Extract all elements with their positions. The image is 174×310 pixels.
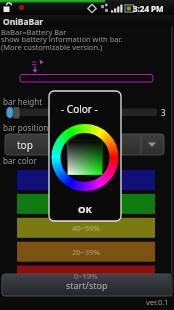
staticText: OniBaBar bbox=[3, 16, 44, 28]
staticText: 3 bbox=[161, 107, 166, 118]
staticText: 80~100% bbox=[70, 175, 102, 185]
staticText: bar color bbox=[3, 155, 37, 166]
button[interactable]: 80~100% bbox=[17, 170, 155, 189]
staticText: top bbox=[17, 138, 33, 152]
staticText: BaBar=Battery Bar bbox=[1, 27, 67, 37]
staticText: 40~59% bbox=[72, 223, 100, 233]
button[interactable]: 0~19% bbox=[17, 266, 155, 285]
staticText: start/stop bbox=[66, 279, 108, 291]
button[interactable]: 40~59% bbox=[17, 218, 155, 237]
button[interactable]: top bbox=[5, 134, 164, 155]
button[interactable]: 20~39% bbox=[17, 242, 155, 261]
button[interactable]: OK bbox=[50, 199, 120, 219]
staticText: - Color - bbox=[61, 102, 98, 116]
staticText: 0~19% bbox=[74, 271, 98, 281]
staticText: OK bbox=[78, 203, 92, 216]
staticText: (More customizable version.) bbox=[1, 42, 103, 52]
button[interactable]: bar height slider bbox=[2, 106, 158, 119]
staticText: bar position bbox=[3, 122, 49, 133]
staticText: show battery information with bar. bbox=[1, 34, 123, 44]
staticText: 3:24 PM bbox=[133, 3, 164, 14]
staticText: bar height bbox=[3, 96, 43, 107]
staticText: ver.0.1 bbox=[146, 297, 169, 307]
staticText: 20~39% bbox=[72, 247, 100, 257]
staticText: 60~79% bbox=[72, 199, 100, 209]
button[interactable]: 60~79% bbox=[17, 194, 155, 213]
button[interactable]: start/stop bbox=[2, 274, 172, 296]
